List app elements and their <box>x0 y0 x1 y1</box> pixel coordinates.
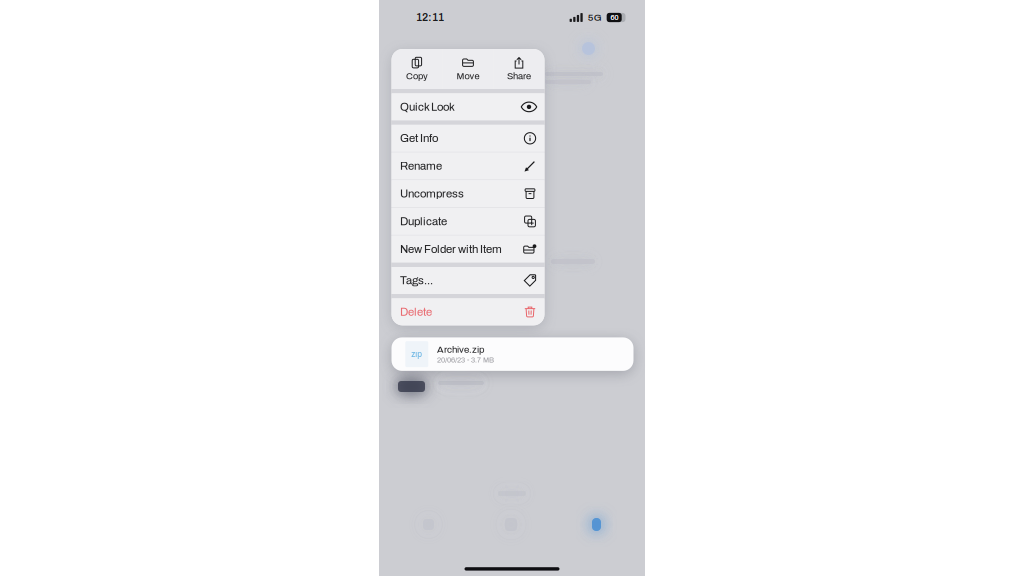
staticText: 60 <box>610 13 618 22</box>
staticText: Share <box>507 71 531 81</box>
button[interactable]: Tags... <box>391 267 544 294</box>
staticText: Delete <box>400 306 432 318</box>
button[interactable]: Duplicate <box>391 208 544 235</box>
staticText: Uncompress <box>400 187 464 200</box>
staticText: Get Info <box>400 132 438 144</box>
staticText: Move <box>456 71 479 81</box>
staticText: Quick Look <box>400 101 455 113</box>
staticText: New Folder with Item <box>400 243 502 255</box>
button[interactable]: Copy <box>391 49 442 89</box>
button[interactable]: Share <box>493 49 544 89</box>
button[interactable]: Get Info <box>391 125 544 152</box>
staticText: 12:11 <box>416 12 444 23</box>
staticText: Rename <box>400 160 442 172</box>
button[interactable]: zip <box>391 337 633 371</box>
button[interactable]: New Folder with Item <box>391 236 544 263</box>
button[interactable]: Rename <box>391 152 544 179</box>
staticText: zip <box>411 350 422 359</box>
staticText: 5G <box>588 12 602 23</box>
staticText: Copy <box>406 71 428 81</box>
button[interactable]: Move <box>442 49 493 89</box>
staticText: 20/06/23 - 3.7 MB <box>437 356 494 364</box>
staticText: Archive.zip <box>437 344 484 355</box>
button[interactable]: Quick Look <box>391 93 544 120</box>
staticText: Duplicate <box>400 215 447 227</box>
button[interactable]: Uncompress <box>391 180 544 207</box>
button[interactable]: Delete <box>391 298 544 325</box>
staticText: Tags... <box>400 274 433 287</box>
